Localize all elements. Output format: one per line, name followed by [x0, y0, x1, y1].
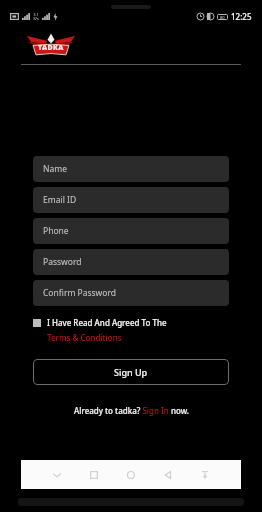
button[interactable]: Name	[33, 156, 229, 182]
button[interactable]: Password	[33, 249, 229, 275]
staticText: 12:25	[231, 11, 252, 22]
button[interactable]: Agree to terms checkbox	[33, 317, 167, 328]
staticText: 3.1 K/s	[33, 12, 39, 21]
staticText: TADKA	[38, 43, 64, 53]
button[interactable]: Back	[157, 464, 179, 486]
staticText: Sign Up	[114, 366, 148, 378]
button[interactable]: Recent apps	[83, 464, 105, 486]
button[interactable]: Hide navigation bar	[46, 464, 68, 486]
button[interactable]: Terms & Conditions	[47, 332, 122, 343]
button[interactable]: Sign Up	[33, 359, 229, 385]
button[interactable]: Email ID	[33, 187, 229, 213]
button[interactable]: Already to tadka? Sign In now.	[33, 405, 229, 416]
staticText: Password	[43, 256, 82, 268]
staticText: Name	[43, 163, 67, 175]
button[interactable]: Phone	[33, 218, 229, 244]
staticText: Confirm Password	[43, 287, 116, 299]
button[interactable]: Confirm Password	[33, 280, 229, 306]
button[interactable]: Download	[194, 464, 216, 486]
staticText: Already to tadka? Sign In now.	[74, 405, 189, 416]
button[interactable]: Home	[120, 464, 142, 486]
staticText: I Have Read And Agreed To The	[47, 317, 167, 328]
staticText: Terms & Conditions	[47, 332, 122, 343]
staticText: Phone	[43, 225, 69, 237]
staticText: 80	[220, 15, 225, 20]
staticText: Email ID	[43, 194, 77, 206]
